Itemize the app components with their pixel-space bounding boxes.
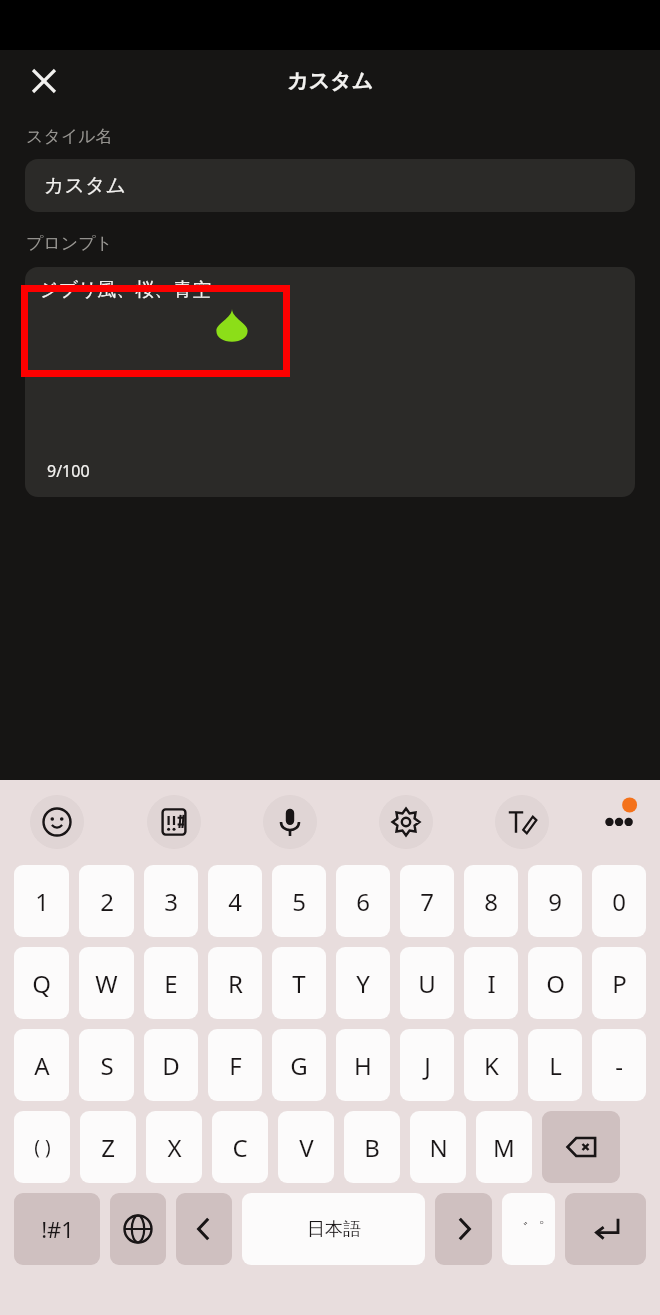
staticText: T [292, 967, 306, 1000]
button[interactable]: T [272, 947, 326, 1019]
staticText: 9/100 [47, 460, 90, 482]
staticText: L [549, 1049, 562, 1082]
staticText: 4 [228, 885, 242, 918]
staticText: ( ) [34, 1134, 51, 1160]
button[interactable]: Keyboard tool [379, 795, 433, 849]
button[interactable]: I [464, 947, 518, 1019]
button[interactable]: E [144, 947, 198, 1019]
button[interactable]: M [476, 1111, 532, 1183]
staticText: ジブリ風、桜、青空 [39, 278, 212, 302]
staticText: I [487, 967, 496, 1000]
staticText: S [100, 1049, 114, 1082]
staticText: 6 [356, 885, 370, 918]
staticText: 1 [35, 885, 49, 918]
staticText: 3 [164, 885, 178, 918]
staticText: W [95, 967, 118, 1000]
staticText: V [299, 1131, 314, 1164]
button[interactable]: H [336, 1029, 390, 1101]
staticText: プロンプト [26, 233, 113, 254]
button[interactable]: 4 [208, 865, 262, 937]
staticText: 0 [612, 885, 626, 918]
button[interactable]: More options [596, 796, 644, 844]
staticText: B [364, 1131, 380, 1164]
button[interactable]: Switch language [110, 1193, 166, 1265]
staticText: ゛゜ [512, 1219, 545, 1239]
button[interactable]: Close [18, 55, 70, 107]
button[interactable]: B [344, 1111, 400, 1183]
button[interactable]: Backspace [542, 1111, 620, 1183]
staticText: G [290, 1049, 308, 1082]
staticText: R [228, 967, 243, 1000]
button[interactable]: R [208, 947, 262, 1019]
button[interactable]: Move cursor left [176, 1193, 232, 1265]
button[interactable]: J [400, 1029, 454, 1101]
button[interactable]: L [528, 1029, 582, 1101]
button[interactable]: N [410, 1111, 466, 1183]
button[interactable]: U [400, 947, 454, 1019]
button[interactable]: A [14, 1029, 69, 1101]
button[interactable]: 0 [592, 865, 646, 937]
staticText: 8 [484, 885, 498, 918]
button[interactable]: O [528, 947, 582, 1019]
staticText: カスタム [287, 68, 373, 94]
button[interactable]: 5 [272, 865, 326, 937]
button[interactable]: V [278, 1111, 334, 1183]
staticText: 9 [548, 885, 562, 918]
button[interactable]: F [208, 1029, 262, 1101]
staticText: 2 [100, 885, 114, 918]
staticText: P [612, 967, 627, 1000]
button[interactable]: Move cursor right [435, 1193, 492, 1265]
staticText: E [164, 967, 178, 1000]
button[interactable]: 日本語 [242, 1193, 425, 1265]
button[interactable]: ジブリ風、桜、青空 [25, 267, 635, 497]
button[interactable]: S [79, 1029, 134, 1101]
button[interactable]: !#1 [14, 1193, 100, 1265]
staticText: F [229, 1049, 242, 1082]
button[interactable]: Keyboard tool [30, 795, 84, 849]
staticText: カスタム [44, 173, 126, 198]
button[interactable]: D [144, 1029, 198, 1101]
staticText: M [493, 1131, 515, 1164]
staticText: Q [32, 967, 51, 1000]
button[interactable]: K [464, 1029, 518, 1101]
staticText: 7 [420, 885, 434, 918]
button[interactable]: ゛゜ [502, 1193, 555, 1265]
staticText: C [232, 1131, 248, 1164]
button[interactable]: - [592, 1029, 646, 1101]
button[interactable]: カスタム [25, 159, 635, 212]
button[interactable]: 3 [144, 865, 198, 937]
staticText: - [615, 1049, 623, 1082]
button[interactable]: 9 [528, 865, 582, 937]
button[interactable]: Q [14, 947, 69, 1019]
staticText: H [354, 1049, 372, 1082]
button[interactable]: Enter [565, 1193, 646, 1265]
button[interactable]: Y [336, 947, 390, 1019]
button[interactable]: 8 [464, 865, 518, 937]
staticText: D [162, 1049, 180, 1082]
staticText: J [424, 1049, 431, 1082]
staticText: Z [101, 1131, 115, 1164]
button[interactable]: Z [80, 1111, 136, 1183]
button[interactable]: G [272, 1029, 326, 1101]
button[interactable]: W [79, 947, 134, 1019]
staticText: !#1 [41, 1214, 74, 1244]
button[interactable]: 2 [79, 865, 134, 937]
button[interactable]: P [592, 947, 646, 1019]
staticText: N [429, 1131, 448, 1164]
button[interactable]: X [146, 1111, 202, 1183]
staticText: K [484, 1049, 499, 1082]
staticText: O [546, 967, 565, 1000]
button[interactable]: 6 [336, 865, 390, 937]
button[interactable]: 1 [14, 865, 69, 937]
button[interactable]: Keyboard tool [495, 795, 549, 849]
button[interactable]: 7 [400, 865, 454, 937]
staticText: 日本語 [307, 1218, 361, 1241]
staticText: U [418, 967, 436, 1000]
staticText: A [34, 1049, 50, 1082]
staticText: Y [356, 967, 370, 1000]
staticText: スタイル名 [26, 126, 113, 147]
button[interactable]: C [212, 1111, 268, 1183]
button[interactable]: Keyboard tool [263, 795, 317, 849]
button[interactable]: ( ) [14, 1111, 70, 1183]
button[interactable]: Keyboard tool [147, 795, 201, 849]
